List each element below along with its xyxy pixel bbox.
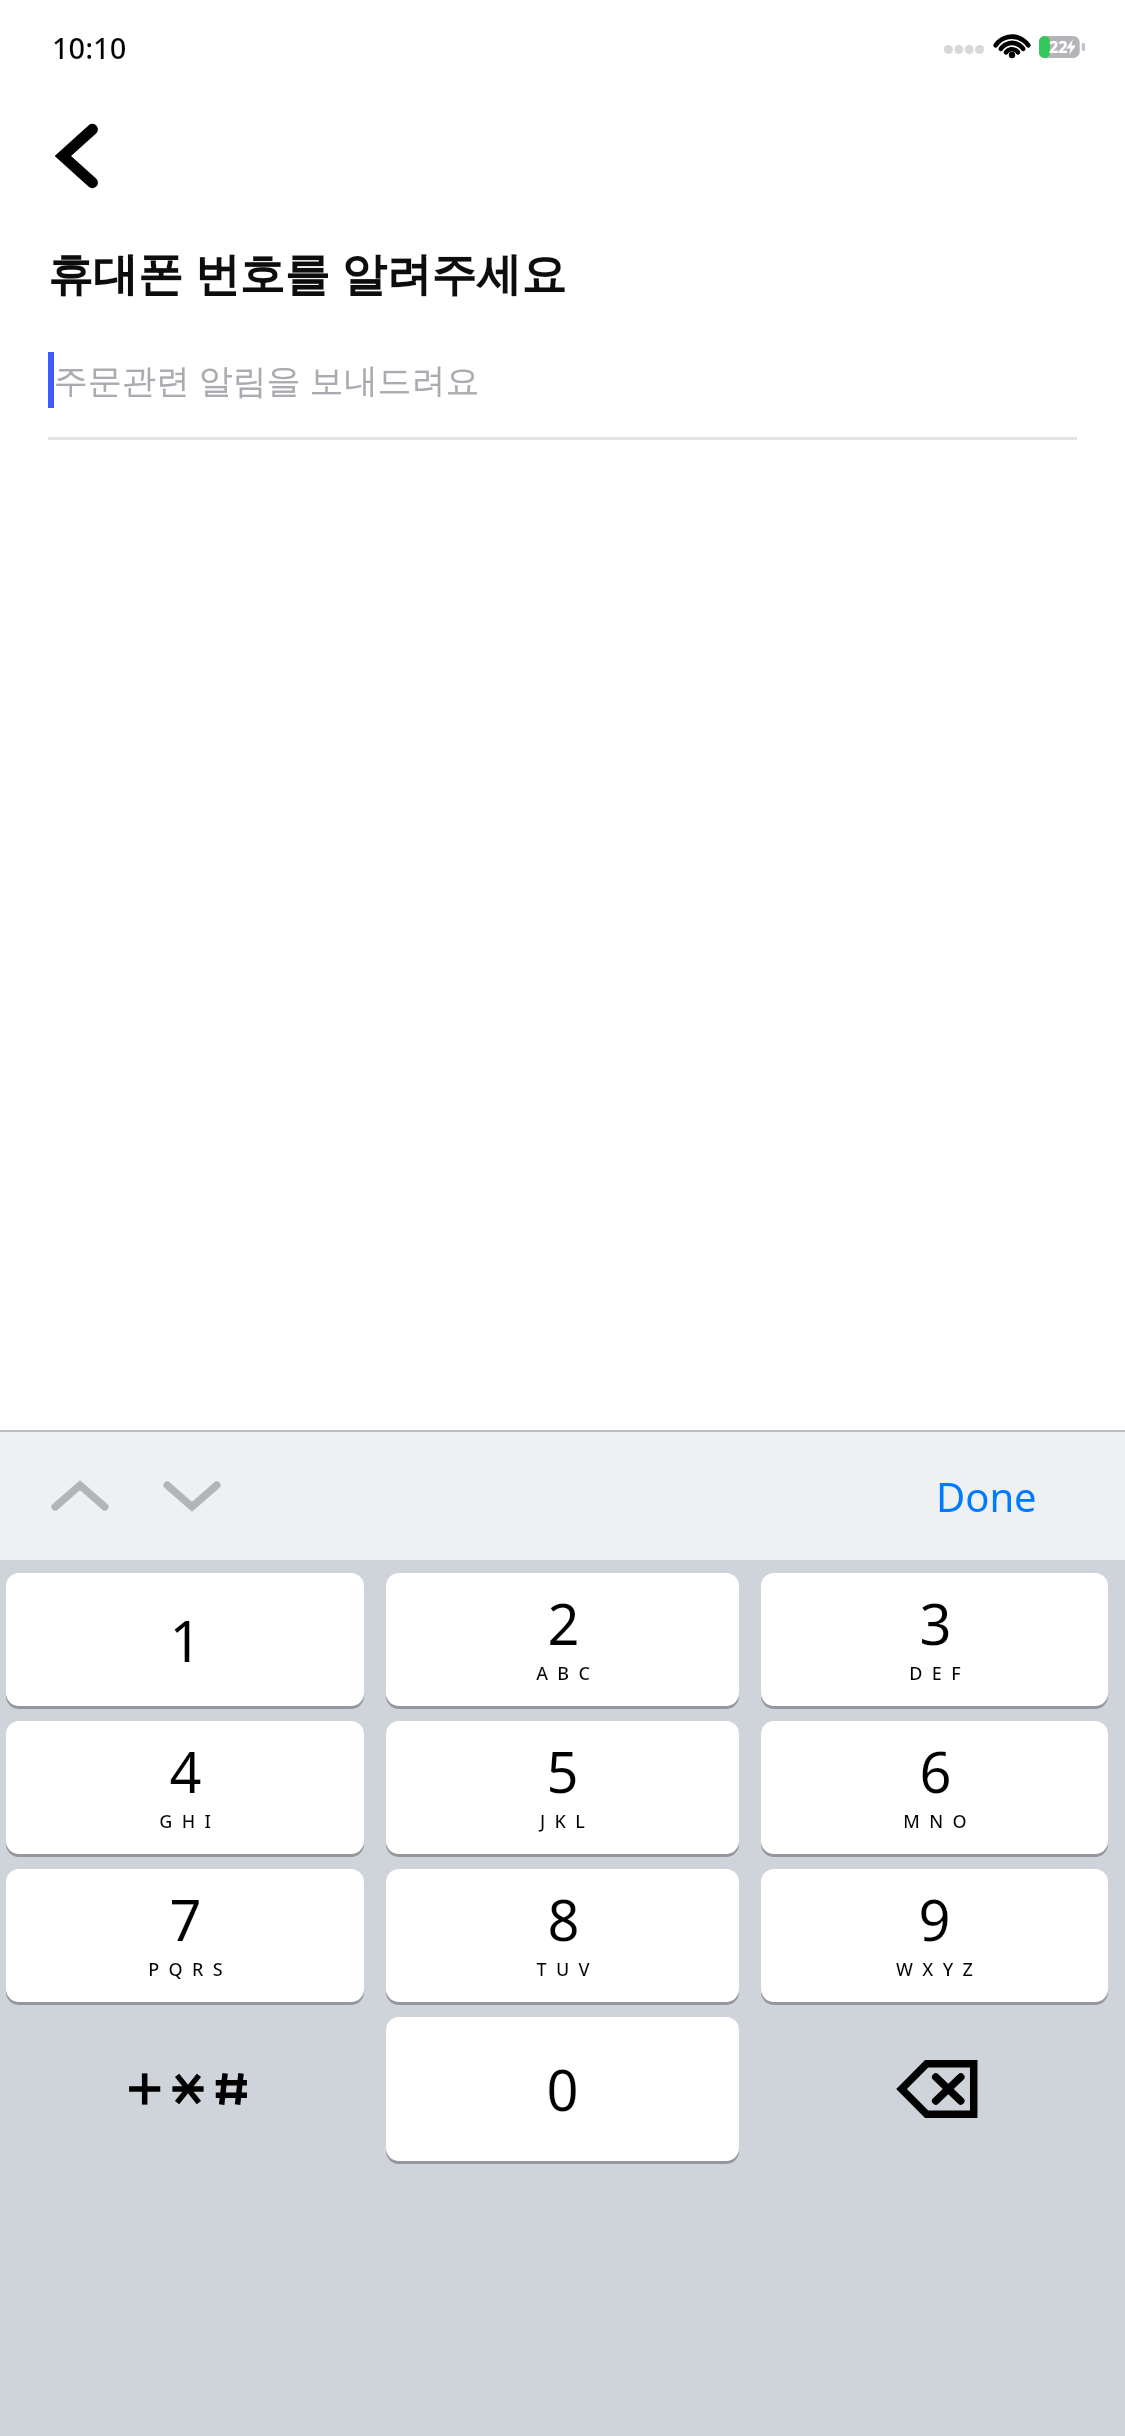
staticText: J K L xyxy=(540,1809,585,1834)
button[interactable]: 6 xyxy=(761,1721,1108,1854)
staticText: W X Y Z xyxy=(896,1957,973,1982)
button[interactable]: 0 xyxy=(386,2017,739,2161)
staticText: 6 xyxy=(919,1733,952,1809)
staticText: 5 xyxy=(546,1733,579,1809)
staticText: 3 xyxy=(919,1585,952,1661)
staticText: 4 xyxy=(169,1733,202,1809)
button[interactable]: 3 xyxy=(761,1573,1108,1706)
button[interactable]: Done xyxy=(924,1451,1049,1541)
button[interactable]: 4 xyxy=(6,1721,364,1854)
button[interactable]: Back xyxy=(26,104,130,208)
staticText: 주문관련 알림을 보내드려요 xyxy=(54,357,480,403)
staticText: 22 xyxy=(1049,36,1068,58)
button[interactable]: Delete xyxy=(750,2017,1125,2161)
staticText: M N O xyxy=(903,1809,967,1834)
button[interactable]: Next field xyxy=(136,1440,248,1552)
staticText: 8 xyxy=(547,1881,580,1957)
button[interactable]: plus star hash xyxy=(0,2017,375,2161)
staticText: 0 xyxy=(546,2051,579,2127)
staticText: P Q R S xyxy=(148,1957,223,1982)
staticText: D E F xyxy=(909,1661,961,1686)
staticText: 9 xyxy=(918,1881,951,1957)
staticText: Done xyxy=(936,1469,1037,1523)
button[interactable]: 2 xyxy=(386,1573,739,1706)
staticText: 10:10 xyxy=(52,28,127,67)
staticText: 1 xyxy=(169,1602,202,1678)
button[interactable]: 8 xyxy=(386,1869,739,2002)
button[interactable]: 5 xyxy=(386,1721,739,1854)
staticText: 휴대폰 번호를 알려주세요 xyxy=(48,242,567,303)
button[interactable]: 1 xyxy=(6,1573,364,1706)
staticText: A B C xyxy=(536,1661,590,1686)
staticText: G H I xyxy=(159,1809,211,1834)
button[interactable]: 9 xyxy=(761,1869,1108,2002)
staticText: T U V xyxy=(536,1957,590,1982)
button[interactable]: Previous field xyxy=(24,1440,136,1552)
staticText: 7 xyxy=(169,1881,202,1957)
staticText: 2 xyxy=(547,1585,580,1661)
button[interactable]: 주문관련 알림을 보내드려요 xyxy=(0,341,1125,419)
button[interactable]: 7 xyxy=(6,1869,364,2002)
